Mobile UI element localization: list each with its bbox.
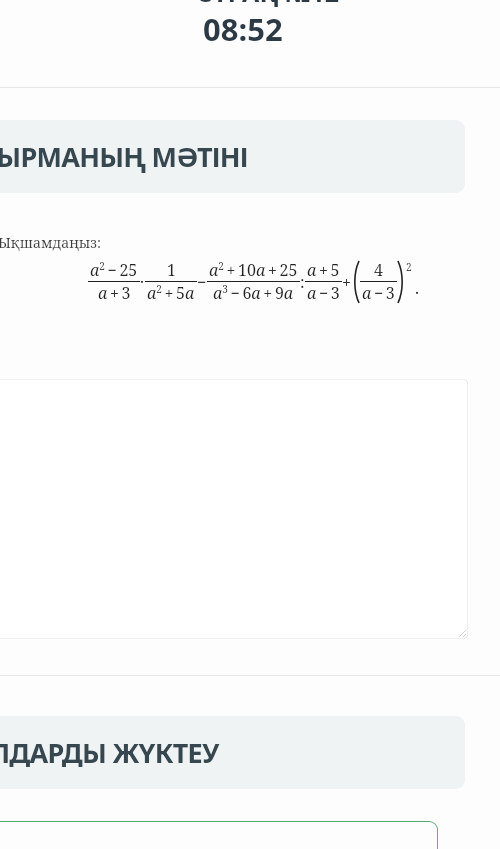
staticText: a2 + 10a + 25 (209, 259, 298, 281)
staticText: − (197, 271, 207, 293)
staticText: СҰРАҚ №12 (196, 0, 340, 7)
button[interactable]: Attach file (0, 821, 438, 849)
staticText: a + 3 (98, 282, 131, 304)
staticText: · (140, 271, 145, 293)
staticText: ТАПСЫРМАНЫҢ МӘТІНІ (0, 138, 248, 175)
staticText: 4 (374, 259, 383, 281)
staticText: a2 − 25 (90, 259, 138, 281)
staticText: a3 − 6a + 9a (213, 282, 294, 304)
button[interactable]: ТАПСЫРМАНЫҢ МӘТІНІ (0, 120, 465, 193)
staticText: a − 3 (307, 282, 340, 304)
staticText: a + 5 (307, 259, 340, 281)
staticText: + (342, 271, 351, 293)
staticText: 1 (167, 259, 176, 281)
button[interactable]: ФАЙЛДАРДЫ ЖҮКТЕУ (0, 716, 465, 789)
staticText: Ықшамдаңыз: (0, 233, 101, 252)
staticText: . (415, 277, 420, 299)
staticText: : (300, 271, 305, 293)
staticText: a − 3 (362, 282, 395, 304)
staticText: 08:52 (203, 8, 283, 44)
staticText: 2 (406, 260, 412, 274)
staticText: ФАЙЛДАРДЫ ЖҮКТЕУ (0, 734, 219, 771)
staticText: a2 + 5a (147, 282, 195, 304)
